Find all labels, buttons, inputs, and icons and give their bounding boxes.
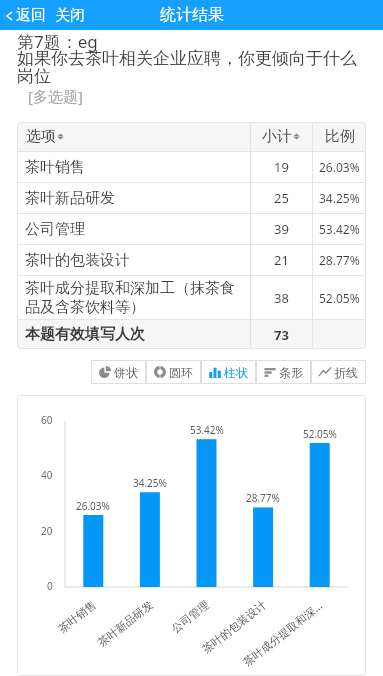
staticText: 40 bbox=[41, 468, 53, 482]
staticText: 条形 bbox=[279, 365, 303, 380]
button[interactable]: 小计 bbox=[251, 122, 312, 151]
other: Back bbox=[3, 10, 15, 22]
staticText: 茶叶的包装设计 bbox=[25, 251, 130, 270]
staticText: 如果你去茶叶相关企业应聘，你更倾向于什么岗位 bbox=[17, 48, 359, 87]
staticText: 21 bbox=[274, 251, 289, 269]
button[interactable]: 柱状 bbox=[201, 360, 256, 384]
staticText: 52.05% bbox=[303, 427, 337, 441]
staticText: 茶叶新品研发 bbox=[25, 189, 115, 208]
staticText: 53.42% bbox=[319, 221, 360, 237]
staticText: 本题有效填写人次 bbox=[25, 325, 145, 344]
staticText: 圆环 bbox=[169, 365, 193, 380]
staticText: 34.25% bbox=[133, 476, 167, 490]
button[interactable]: Back bbox=[0, 2, 48, 29]
staticText: 20 bbox=[41, 524, 53, 538]
staticText: 28.77% bbox=[319, 252, 360, 268]
button[interactable]: 圆环 bbox=[146, 360, 201, 384]
staticText: 选项 bbox=[26, 127, 56, 146]
staticText: 茶叶的包装设计 bbox=[199, 598, 269, 656]
staticText: 34.25% bbox=[319, 190, 360, 206]
staticText: 26.03% bbox=[319, 159, 360, 175]
staticText: 比例 bbox=[325, 127, 355, 146]
staticText: 茶叶销售 bbox=[25, 158, 85, 177]
staticText: 返回 bbox=[16, 6, 46, 25]
staticText: 茶叶新品研发 bbox=[95, 598, 156, 649]
staticText: 公司管理 bbox=[25, 220, 85, 239]
staticText: 茶叶成分提取和深… bbox=[240, 598, 325, 669]
staticText: 52.05% bbox=[319, 290, 360, 306]
button[interactable]: 饼状 bbox=[91, 360, 146, 384]
button[interactable]: 选项 bbox=[17, 122, 250, 151]
staticText: 小计 bbox=[262, 127, 292, 146]
button[interactable]: 关闭 bbox=[53, 2, 87, 29]
staticText: 统计结果 bbox=[160, 5, 224, 25]
staticText: 第7题：eg bbox=[17, 30, 98, 53]
staticText: 53.42% bbox=[190, 423, 224, 437]
staticText: 柱状 bbox=[224, 365, 248, 380]
staticText: 饼状 bbox=[114, 365, 138, 380]
staticText: 折线 bbox=[334, 365, 358, 380]
button[interactable]: 条形 bbox=[256, 360, 311, 384]
staticText: 25 bbox=[274, 189, 289, 207]
staticText: 26.03% bbox=[76, 499, 110, 513]
staticText: 60 bbox=[41, 413, 53, 427]
staticText: 19 bbox=[274, 158, 289, 176]
staticText: 茶叶销售 bbox=[55, 598, 99, 636]
staticText: 茶叶成分提取和深加工（抹茶食品及含茶饮料等） bbox=[25, 279, 241, 317]
staticText: 关闭 bbox=[55, 6, 85, 25]
staticText: [多选题] bbox=[28, 86, 83, 106]
staticText: 公司管理 bbox=[168, 598, 212, 636]
button[interactable]: 折线 bbox=[311, 360, 366, 384]
staticText: 28.77% bbox=[246, 491, 280, 505]
staticText: 39 bbox=[274, 220, 289, 238]
staticText: 38 bbox=[274, 289, 289, 307]
staticText: 73 bbox=[274, 326, 289, 344]
staticText: 0 bbox=[47, 579, 53, 593]
